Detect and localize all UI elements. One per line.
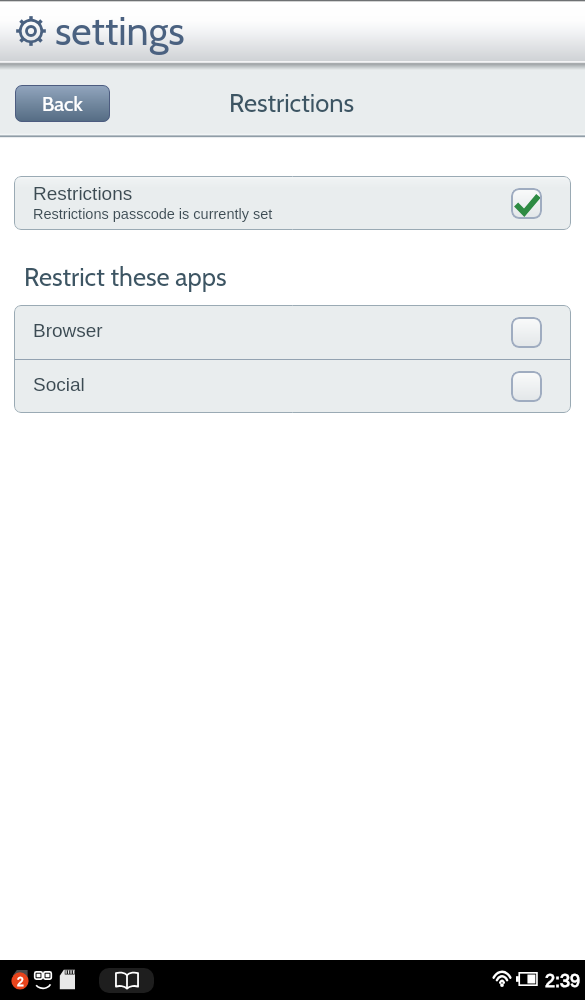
button[interactable]: Disabled (511, 317, 542, 348)
staticText: Back (42, 91, 83, 116)
staticText: Restrictions (229, 87, 354, 118)
button[interactable]: Back (15, 85, 110, 122)
button[interactable]: Disabled (511, 371, 542, 402)
button[interactable]: Reader (99, 968, 154, 993)
other: Messages (34, 971, 52, 989)
button[interactable]: Restrictions (14, 176, 571, 230)
other: Settings (16, 16, 46, 46)
other: Storage (59, 969, 75, 990)
staticText: 2 (17, 975, 24, 988)
staticText: 2:39 (545, 971, 581, 991)
staticText: Restrictions (33, 183, 133, 204)
other: Notifications (10, 969, 30, 990)
button[interactable]: Browser (14, 305, 571, 359)
other: Wi-Fi (492, 971, 512, 987)
button[interactable]: Enabled (511, 188, 542, 219)
staticText: settings (55, 7, 185, 55)
staticText: Social (33, 374, 85, 395)
other: Battery (516, 972, 538, 986)
staticText: Restrictions passcode is currently set (33, 206, 273, 222)
button[interactable]: Social (14, 360, 571, 413)
staticText: Browser (33, 320, 103, 341)
staticText: Restrict these apps (24, 261, 227, 292)
